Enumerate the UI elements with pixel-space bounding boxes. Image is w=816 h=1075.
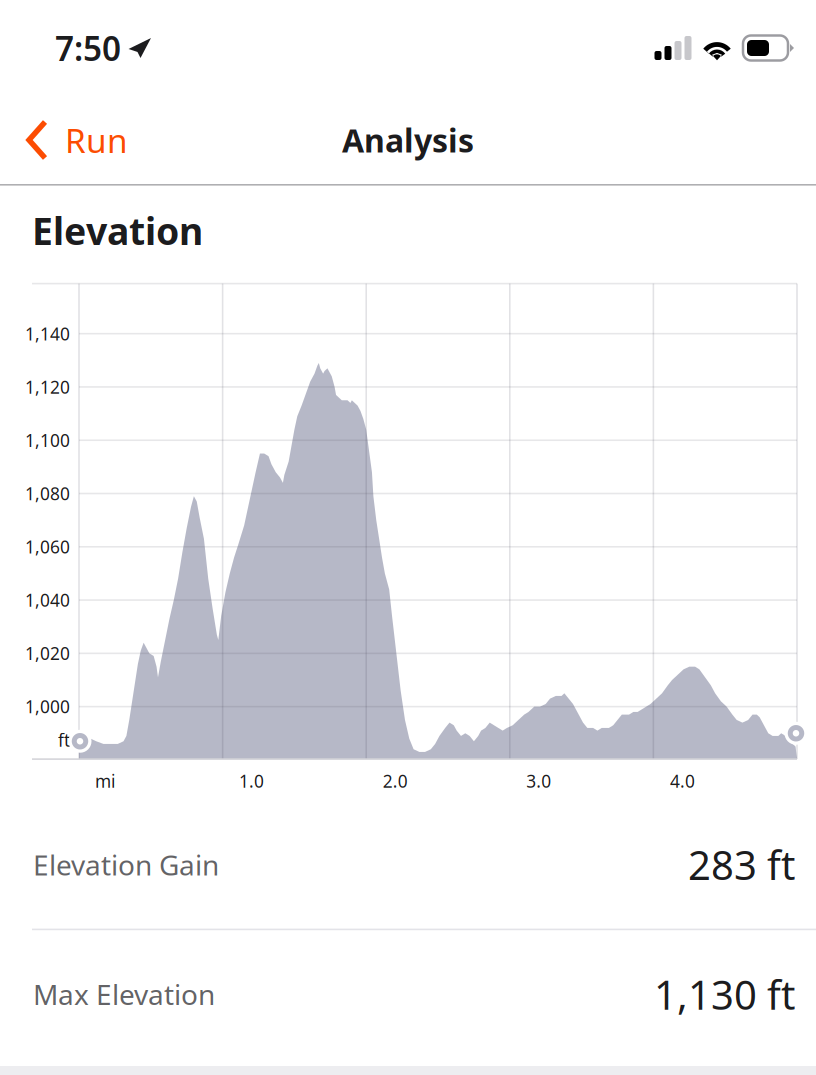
staticText: 3.0 [526,770,551,793]
staticText: 1,130 ft [654,968,795,1021]
staticText: 1,060 [25,535,70,558]
staticText: 4.0 [670,770,695,793]
staticText: 1,000 [25,695,70,718]
button[interactable]: Max Elevation [0,930,816,1058]
staticText: 7:50 [55,26,121,70]
staticText: 1.0 [239,770,264,793]
staticText: 2.0 [383,770,408,793]
staticText: mi [95,770,115,793]
staticText: 1,020 [25,642,70,665]
staticText: Run [65,118,128,162]
staticText: Max Elevation [33,976,215,1013]
staticText: 1,120 [25,375,70,398]
staticText: Elevation Gain [33,846,219,883]
staticText: 1,100 [25,429,70,452]
staticText: 1,040 [25,589,70,612]
staticText: Elevation [32,206,203,255]
staticText: Analysis [342,119,474,161]
staticText: 1,080 [25,482,70,505]
staticText: ft [58,729,70,752]
button[interactable]: Elevation Gain [0,801,816,929]
staticText: 1,140 [25,322,70,345]
staticText: 283 ft [688,838,795,891]
button[interactable]: Run [0,96,154,184]
